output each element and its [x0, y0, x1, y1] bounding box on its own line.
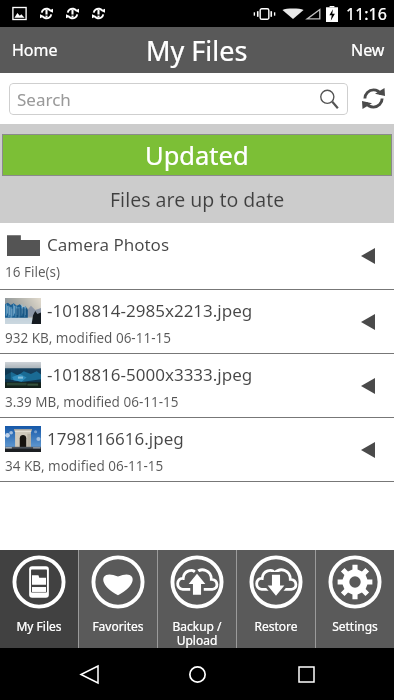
button[interactable]: Favorites — [79, 550, 157, 648]
staticText: Backup / Upload — [172, 618, 222, 648]
staticText: -1018814-2985x2213.jpeg — [47, 299, 253, 322]
button[interactable]: Settings — [316, 550, 394, 648]
staticText: New — [351, 39, 385, 61]
staticText: 34 KB, modified 06-11-15 — [5, 457, 164, 475]
staticText: Camera Photos — [47, 233, 170, 256]
button[interactable]: Expand — [350, 368, 386, 404]
button[interactable]: New — [339, 27, 394, 73]
button[interactable]: -1018814-2985x2213.jpeg — [0, 290, 394, 353]
button[interactable]: Updated — [3, 135, 391, 175]
staticText: 16 File(s) — [5, 263, 61, 281]
button[interactable]: My Files — [0, 550, 78, 648]
staticText: Updated — [145, 138, 249, 173]
staticText: Restore — [254, 618, 298, 634]
staticText: 1798116616.jpeg — [47, 427, 184, 450]
staticText: My Files — [16, 618, 62, 634]
button[interactable]: Restore — [237, 550, 315, 648]
button[interactable]: Search — [9, 83, 348, 115]
button[interactable]: Expand — [350, 432, 386, 468]
staticText: 11:16 — [346, 3, 387, 25]
button[interactable]: Backup / Upload — [158, 550, 236, 648]
button[interactable]: Refresh — [358, 84, 388, 114]
staticText: Home — [12, 39, 58, 61]
staticText: Settings — [332, 618, 378, 634]
button[interactable]: Home — [177, 654, 217, 694]
staticText: 932 KB, modified 06-11-15 — [5, 329, 171, 347]
button[interactable]: Expand — [350, 304, 386, 340]
button[interactable]: Expand — [350, 238, 386, 274]
button[interactable]: -1018816-5000x3333.jpeg — [0, 354, 394, 417]
staticText: -1018816-5000x3333.jpeg — [47, 363, 253, 386]
button[interactable]: 1798116616.jpeg — [0, 418, 394, 481]
staticText: Favorites — [92, 618, 144, 634]
staticText: 3.39 MB, modified 06-11-15 — [5, 393, 179, 411]
button[interactable]: Camera Photos — [0, 223, 394, 289]
staticText: Search — [17, 88, 71, 111]
button[interactable]: Home — [0, 27, 70, 73]
button[interactable]: Recents — [286, 654, 326, 694]
button[interactable]: Back — [69, 654, 109, 694]
staticText: My Files — [146, 32, 248, 69]
staticText: Files are up to date — [110, 186, 285, 213]
